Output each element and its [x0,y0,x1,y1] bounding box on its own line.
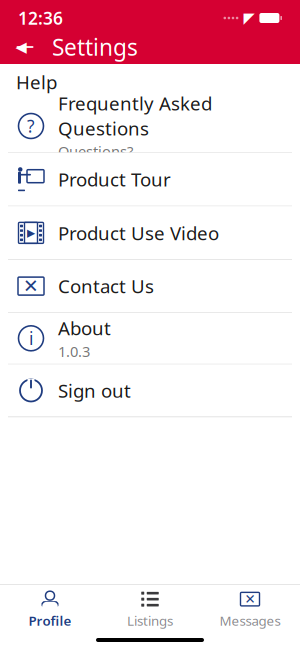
staticText: Sign out [58,378,131,403]
button[interactable]: Product Tour [0,153,300,206]
staticText: Settings [52,32,138,62]
button[interactable]: Back [0,30,46,64]
button[interactable]: ▶ [0,206,300,260]
staticText: Help [16,70,57,94]
staticText: ▶ [27,227,35,239]
button[interactable]: Listings [100,583,200,633]
button[interactable]: Profile [0,583,100,633]
button[interactable]: Sign out [0,364,300,417]
staticText: ✕ [244,592,255,607]
staticText: Profile [28,612,71,629]
button[interactable]: i [0,313,300,364]
staticText: ✕ [23,275,39,297]
staticText: ◤ [243,10,254,26]
button[interactable]: ? [0,100,300,153]
staticText: 1.0.3 [58,341,90,361]
staticText: Questions? [58,142,133,161]
staticText: Frequently Asked Questions [58,91,212,141]
staticText: ◀ [15,39,26,55]
staticText: i [29,327,33,350]
staticText: Messages [219,612,280,629]
staticText: Listings [127,612,173,629]
staticText: Contact Us [58,274,154,298]
staticText: Product Use Video [58,220,219,245]
staticText: 12:36 [18,6,63,29]
button[interactable]: ✕ [200,583,300,633]
staticText: ? [27,114,35,137]
button[interactable]: ✕ [0,260,300,313]
staticText: About [58,316,111,340]
staticText: Product Tour [58,167,171,192]
